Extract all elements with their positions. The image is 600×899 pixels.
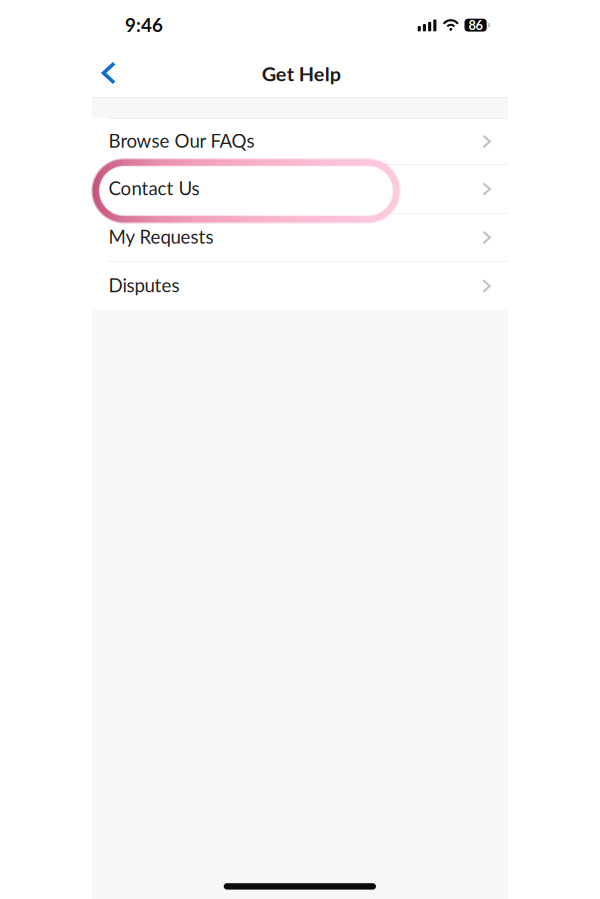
staticText: Disputes xyxy=(109,274,180,296)
staticText: Get Help xyxy=(262,62,341,85)
staticText: Browse Our FAQs xyxy=(109,129,255,152)
button[interactable]: Contact Us xyxy=(92,165,508,213)
staticText: 9:46 xyxy=(125,13,163,36)
button[interactable]: My Requests xyxy=(92,214,508,261)
staticText: My Requests xyxy=(109,225,214,248)
button[interactable]: Browse Our FAQs xyxy=(92,119,508,164)
staticText: 86 xyxy=(469,17,483,33)
staticText: Contact Us xyxy=(109,177,200,199)
button[interactable]: Back xyxy=(89,50,129,96)
button[interactable]: Disputes xyxy=(92,262,508,310)
